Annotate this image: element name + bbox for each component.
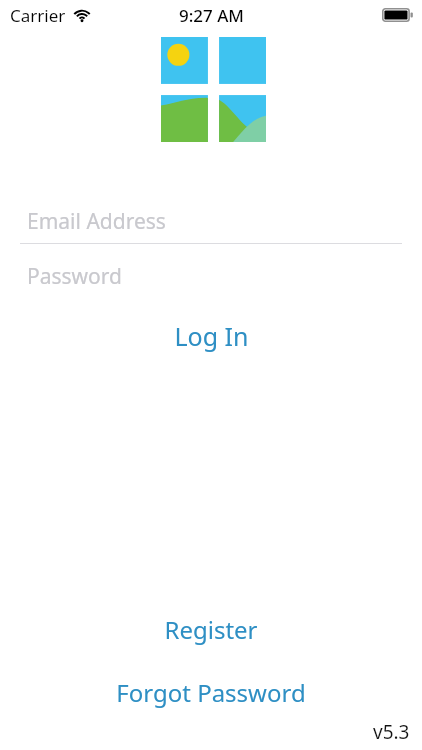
staticText: Password [27, 262, 122, 291]
staticText: v5.3 [373, 719, 410, 745]
button[interactable]: Email Address [0, 199, 422, 243]
staticText: Log In [174, 319, 249, 353]
button[interactable]: Password [0, 254, 422, 298]
other: Wi-Fi signal [73, 9, 91, 22]
staticText: Forgot Password [116, 676, 306, 709]
staticText: 9:27 AM [179, 4, 244, 27]
staticText: Carrier [10, 4, 66, 27]
button[interactable]: Register [0, 607, 422, 651]
button[interactable]: Forgot Password [0, 670, 422, 714]
staticText: Register [164, 613, 258, 646]
other: App logo [161, 37, 266, 142]
staticText: Email Address [27, 207, 166, 236]
button[interactable]: Log In [0, 314, 422, 358]
